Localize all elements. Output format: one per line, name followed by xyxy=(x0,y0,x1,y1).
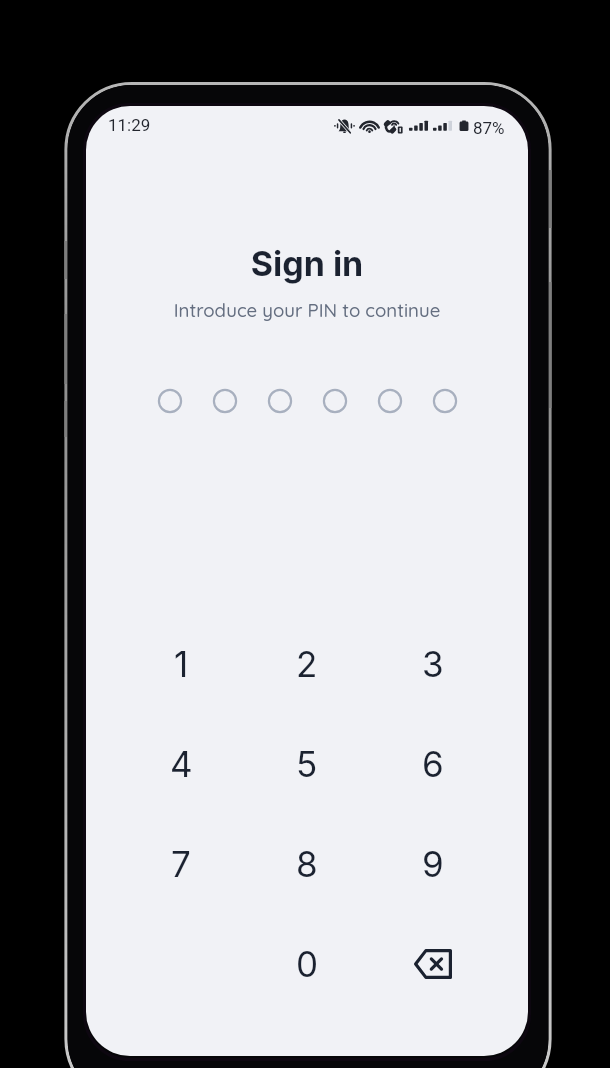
button[interactable]: 7 xyxy=(118,814,244,914)
staticText: 11:29 xyxy=(108,115,151,135)
staticText: Sign in xyxy=(86,243,528,284)
button[interactable]: 4 xyxy=(118,714,244,814)
button[interactable]: 0 xyxy=(244,914,370,1014)
staticText: 9 xyxy=(422,843,444,885)
button[interactable]: 1 xyxy=(118,614,244,714)
staticText: 87% xyxy=(473,118,505,138)
button[interactable]: 5 xyxy=(244,714,370,814)
button[interactable]: 9 xyxy=(370,814,496,914)
staticText: 8 xyxy=(296,843,318,885)
staticText: 1 xyxy=(174,643,189,685)
staticText: 0 xyxy=(296,943,319,985)
staticText: 3 xyxy=(422,643,444,685)
staticText: 5 xyxy=(296,743,318,785)
staticText: 7 xyxy=(171,843,191,885)
staticText: Introduce your PIN to continue xyxy=(86,298,528,321)
staticText: 6 xyxy=(422,743,444,785)
button[interactable]: 2 xyxy=(244,614,370,714)
staticText: 4 xyxy=(170,743,193,785)
button[interactable]: 8 xyxy=(244,814,370,914)
button[interactable]: 6 xyxy=(370,714,496,814)
button[interactable]: Backspace xyxy=(370,914,496,1014)
staticText: 2 xyxy=(296,643,318,685)
button[interactable]: 3 xyxy=(370,614,496,714)
other: Backspace xyxy=(414,949,452,979)
